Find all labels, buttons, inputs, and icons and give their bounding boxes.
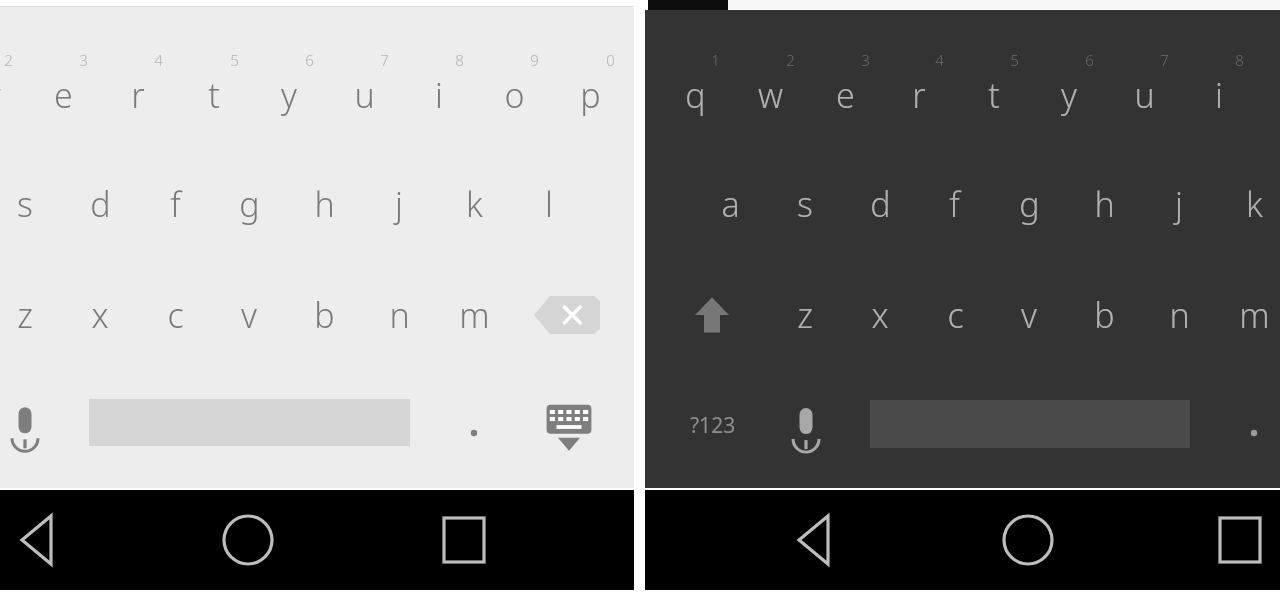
button[interactable]: Recent apps	[434, 510, 494, 570]
button[interactable]: 1	[670, 30, 760, 90]
button[interactable]: r	[93, 65, 183, 125]
button[interactable]: c	[130, 285, 220, 345]
staticText: 4	[935, 50, 944, 70]
button[interactable]: 5	[189, 30, 279, 90]
button[interactable]: Period	[1232, 405, 1276, 449]
button[interactable]: t	[169, 65, 259, 125]
staticText: 3	[861, 50, 870, 70]
button[interactable]: x	[55, 285, 145, 345]
button[interactable]: m	[429, 285, 519, 345]
staticText: 6	[1085, 50, 1094, 70]
button[interactable]: x	[835, 285, 925, 345]
button[interactable]: Hide keyboard	[541, 398, 597, 454]
button[interactable]: Shift	[686, 292, 738, 338]
button[interactable]: Period	[452, 405, 496, 449]
button[interactable]: u	[319, 65, 409, 125]
button[interactable]: s	[760, 174, 850, 234]
button[interactable]: k	[429, 174, 519, 234]
staticText: i	[435, 72, 443, 118]
button[interactable]: 3	[38, 30, 128, 90]
button[interactable]: s	[0, 174, 70, 234]
staticText: q	[685, 72, 706, 118]
button[interactable]: p	[545, 65, 635, 125]
button[interactable]: 9	[489, 30, 579, 90]
button[interactable]: d	[835, 174, 925, 234]
button[interactable]: j	[354, 174, 444, 234]
button[interactable]: 7	[1119, 30, 1209, 90]
button[interactable]: Recent apps	[1210, 510, 1270, 570]
staticText: y	[281, 72, 297, 118]
staticText: e	[836, 72, 855, 118]
staticText: u	[354, 72, 375, 118]
button[interactable]: h	[279, 174, 369, 234]
button[interactable]: c	[910, 285, 1000, 345]
button[interactable]: f	[909, 174, 999, 234]
button[interactable]: b	[1059, 285, 1149, 345]
button[interactable]: b	[279, 285, 369, 345]
button[interactable]: ?123	[672, 402, 754, 448]
button[interactable]: 2	[745, 30, 835, 90]
button[interactable]: Back	[785, 510, 845, 570]
button[interactable]: z	[760, 285, 850, 345]
button[interactable]: i	[1174, 65, 1264, 125]
button[interactable]: q	[650, 65, 740, 125]
button[interactable]: w	[725, 65, 815, 125]
button[interactable]: i	[394, 65, 484, 125]
button[interactable]: k	[1209, 174, 1280, 234]
staticText: s	[17, 181, 33, 227]
button[interactable]	[645, 10, 1280, 488]
button[interactable]: h	[1059, 174, 1149, 234]
button[interactable]: Back	[8, 510, 68, 570]
staticText: a	[721, 181, 740, 227]
button[interactable]: 6	[1044, 30, 1134, 90]
button[interactable]: Home	[218, 510, 278, 570]
staticText: z	[797, 292, 813, 338]
button[interactable]: 4	[894, 30, 984, 90]
button[interactable]: Voice input	[784, 398, 828, 454]
button[interactable]: 8	[414, 30, 504, 90]
button[interactable]: Voice input	[2, 398, 48, 450]
button[interactable]: n	[1134, 285, 1224, 345]
button[interactable]	[0, 8, 634, 488]
button[interactable]: y	[244, 65, 334, 125]
button[interactable]: 7	[339, 30, 429, 90]
staticText: h	[314, 181, 335, 227]
button[interactable]: m	[1209, 285, 1280, 345]
button[interactable]: r	[874, 65, 964, 125]
button[interactable]: Home	[998, 510, 1058, 570]
button[interactable]: g	[204, 174, 294, 234]
button[interactable]: t	[949, 65, 1039, 125]
button[interactable]: u	[1099, 65, 1189, 125]
staticText: t	[208, 72, 220, 118]
button[interactable]: 8	[1194, 30, 1280, 90]
button[interactable]: j	[1134, 174, 1224, 234]
staticText: f	[170, 181, 181, 227]
button[interactable]: g	[984, 174, 1074, 234]
button[interactable]: l	[504, 174, 594, 234]
button[interactable]: v	[984, 285, 1074, 345]
staticText: h	[1094, 181, 1115, 227]
button[interactable]: a	[685, 174, 775, 234]
button[interactable]: n	[354, 285, 444, 345]
staticText: x	[871, 292, 889, 338]
staticText: 7	[380, 50, 389, 70]
button[interactable]: f	[130, 174, 220, 234]
button[interactable]: v	[204, 285, 294, 345]
staticText: 2	[786, 50, 795, 70]
button[interactable]: d	[55, 174, 145, 234]
button[interactable]: 6	[264, 30, 354, 90]
button[interactable]: 3	[820, 30, 910, 90]
button[interactable]: Delete	[534, 290, 600, 340]
button[interactable]: e	[800, 65, 890, 125]
button[interactable]: z	[0, 285, 70, 345]
button[interactable]: 5	[969, 30, 1059, 90]
button[interactable]: e	[18, 65, 108, 125]
button[interactable]: 0	[565, 30, 655, 90]
button[interactable]: 4	[113, 30, 203, 90]
button[interactable]: 2	[0, 30, 53, 90]
button[interactable]: o	[469, 65, 559, 125]
button[interactable]: y	[1024, 65, 1114, 125]
